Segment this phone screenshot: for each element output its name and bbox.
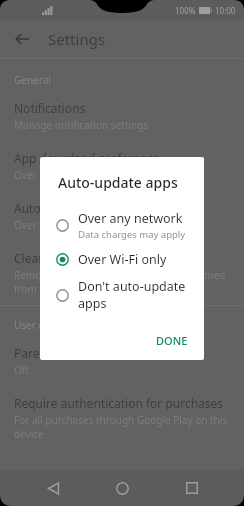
staticText: DONE bbox=[156, 333, 188, 348]
button[interactable]: Over any network bbox=[40, 205, 204, 246]
staticText: Require authentication for purchases bbox=[14, 395, 224, 411]
button[interactable]: Back bbox=[6, 23, 38, 55]
button[interactable]: Auto-update apps bbox=[0, 191, 244, 241]
staticText: Data charges may apply bbox=[78, 228, 186, 241]
staticText: 10:00 bbox=[215, 5, 236, 16]
staticText: Notifications bbox=[14, 100, 86, 116]
staticText: User controls bbox=[14, 318, 77, 332]
button[interactable]: Notifications bbox=[0, 91, 244, 141]
staticText: Over Wi-Fi only bbox=[78, 251, 167, 268]
staticText: Settings bbox=[48, 29, 106, 49]
staticText: Don't auto-update apps bbox=[78, 278, 192, 312]
button[interactable]: DONE bbox=[148, 327, 196, 354]
staticText: Clear local search history bbox=[14, 250, 155, 266]
staticText: Over any network bbox=[14, 168, 98, 182]
staticText: For all purchases through Google Play on… bbox=[14, 413, 230, 441]
button[interactable]: Recent apps bbox=[175, 471, 209, 505]
button[interactable]: Parental controls bbox=[0, 336, 244, 386]
button[interactable]: Don't auto-update apps bbox=[40, 273, 204, 317]
staticText: Over any network bbox=[78, 210, 183, 227]
button[interactable]: App download preference bbox=[0, 141, 244, 191]
staticText: Auto-update apps bbox=[14, 200, 115, 216]
button[interactable]: Home bbox=[105, 471, 139, 505]
staticText: 100% bbox=[175, 5, 196, 16]
staticText: Parental controls bbox=[14, 345, 110, 361]
button[interactable]: Over Wi-Fi only bbox=[40, 246, 204, 273]
staticText: General bbox=[14, 73, 51, 87]
button[interactable]: Require authentication for purchases bbox=[0, 386, 244, 450]
staticText: Manage notification settings bbox=[14, 118, 149, 132]
staticText: Over Wi-Fi only bbox=[14, 218, 85, 232]
staticText: Remove all the searches you have perform… bbox=[14, 268, 230, 296]
staticText: Off bbox=[14, 363, 29, 377]
staticText: Auto-update apps bbox=[58, 173, 178, 192]
staticText: App download preference bbox=[14, 150, 160, 166]
button[interactable]: Clear local search history bbox=[0, 241, 244, 305]
button[interactable]: Back bbox=[36, 471, 70, 505]
